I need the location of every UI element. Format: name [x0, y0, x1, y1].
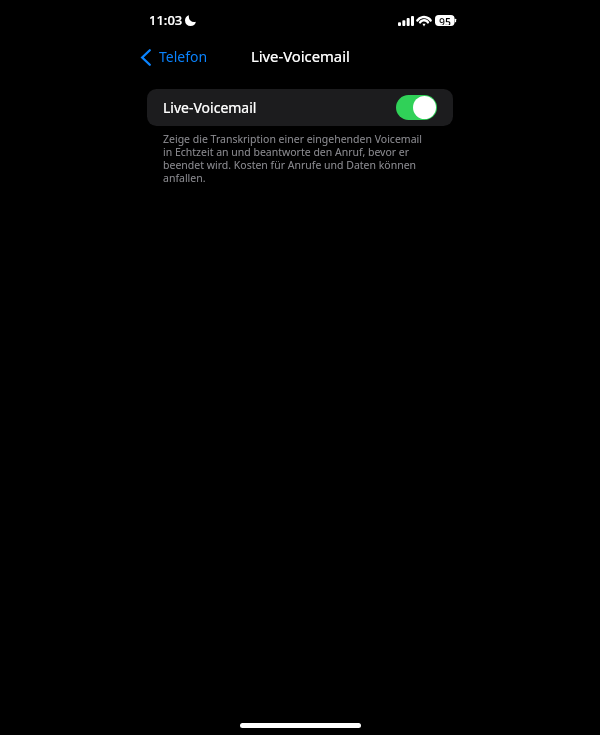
staticText: Live-Voicemail — [251, 46, 350, 66]
staticText: Zeige die Transkription einer eingehende… — [163, 132, 425, 185]
other: Mobilfunk-Signalstärke — [398, 16, 414, 26]
button[interactable]: Telefon — [133, 43, 216, 70]
staticText: Telefon — [159, 47, 208, 66]
button[interactable]: Live-Voicemail — [147, 89, 453, 126]
staticText: Live-Voicemail — [163, 98, 257, 117]
button[interactable]: Live-Voicemail ein- oder ausschalten — [396, 95, 437, 120]
staticText: 95 — [439, 15, 452, 25]
other: WLAN — [417, 15, 431, 25]
other: Nicht stören — [185, 15, 196, 26]
other: Batterie 95 Prozent — [435, 15, 456, 26]
staticText: 11:03 — [149, 11, 183, 29]
